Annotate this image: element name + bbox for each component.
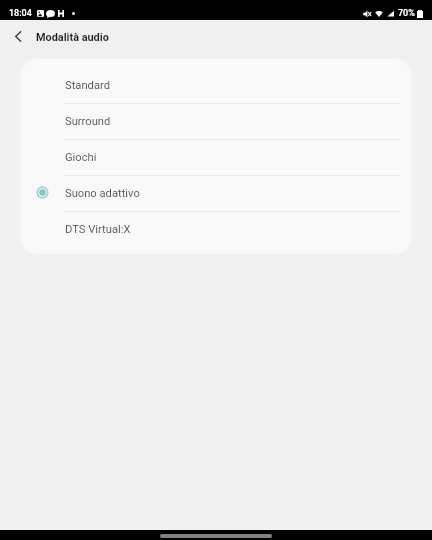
button[interactable]: Suono adattivo [21,176,411,212]
staticText: 18:04 [9,8,32,19]
button[interactable]: Back [3,22,32,51]
staticText: Giochi [65,151,97,164]
staticText: 70% [398,8,415,19]
button[interactable]: Surround [21,104,411,140]
button[interactable]: Standard [21,68,411,104]
button[interactable]: DTS Virtual:X [21,212,411,248]
staticText: DTS Virtual:X [65,223,131,236]
staticText: Surround [65,115,111,128]
staticText: Suono adattivo [65,187,140,200]
staticText: Modalità audio [36,31,109,44]
button[interactable]: Giochi [21,140,411,176]
staticText: Standard [65,79,110,92]
